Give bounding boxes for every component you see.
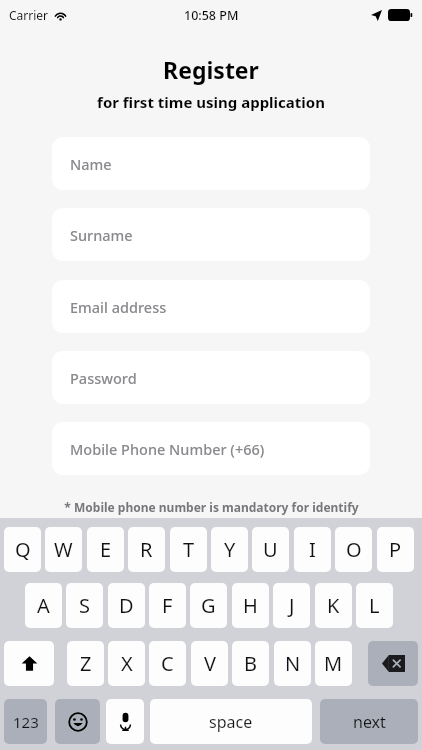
button[interactable]: Mobile Phone Number (+66): [52, 422, 370, 475]
staticText: P: [389, 536, 402, 563]
staticText: Name: [70, 154, 112, 174]
staticText: Carrier: [9, 7, 49, 23]
button[interactable]: 123: [4, 699, 47, 744]
staticText: Mobile Phone Number (+66): [70, 439, 265, 459]
staticText: next: [353, 711, 386, 733]
staticText: C: [161, 650, 174, 677]
staticText: Y: [224, 536, 236, 563]
button[interactable]: G: [190, 583, 227, 628]
button[interactable]: W: [45, 527, 82, 572]
staticText: T: [183, 536, 195, 563]
button[interactable]: Q: [4, 527, 41, 572]
button[interactable]: next: [320, 699, 418, 744]
button[interactable]: Backspace: [368, 641, 418, 686]
staticText: O: [346, 536, 362, 563]
button[interactable]: D: [108, 583, 145, 628]
staticText: 123: [13, 712, 39, 732]
staticText: D: [119, 592, 134, 619]
button[interactable]: F: [149, 583, 186, 628]
button[interactable]: S: [66, 583, 103, 628]
button[interactable]: C: [149, 641, 186, 686]
button[interactable]: T: [170, 527, 207, 572]
button[interactable]: Surname: [52, 208, 370, 261]
staticText: Surname: [70, 225, 133, 245]
button[interactable]: Name: [52, 137, 370, 190]
button[interactable]: Shift: [4, 641, 54, 686]
staticText: U: [263, 536, 278, 563]
button[interactable]: A: [25, 583, 62, 628]
staticText: Password: [70, 368, 137, 388]
button[interactable]: U: [252, 527, 289, 572]
button[interactable]: Email address: [52, 280, 370, 333]
button[interactable]: Voice input: [106, 699, 144, 744]
staticText: S: [79, 592, 90, 619]
staticText: L: [369, 592, 380, 619]
staticText: J: [289, 592, 295, 619]
staticText: F: [162, 592, 173, 619]
button[interactable]: L: [356, 583, 393, 628]
staticText: A: [37, 592, 50, 619]
button[interactable]: P: [377, 527, 414, 572]
button[interactable]: Z: [67, 641, 104, 686]
staticText: K: [327, 592, 340, 619]
button[interactable]: K: [315, 583, 352, 628]
staticText: V: [204, 650, 216, 677]
button[interactable]: Y: [211, 527, 248, 572]
button[interactable]: I: [294, 527, 331, 572]
button[interactable]: E: [87, 527, 124, 572]
button[interactable]: R: [128, 527, 165, 572]
staticText: 10:58 PM: [184, 7, 239, 24]
staticText: N: [285, 650, 301, 677]
button[interactable]: V: [191, 641, 228, 686]
staticText: X: [121, 650, 133, 677]
staticText: space: [209, 711, 253, 733]
button[interactable]: H: [232, 583, 269, 628]
button[interactable]: O: [335, 527, 372, 572]
staticText: for first time using application: [97, 92, 325, 112]
staticText: E: [100, 536, 112, 563]
staticText: Email address: [70, 297, 167, 317]
staticText: * Mobile phone number is mandatory for i…: [64, 499, 359, 515]
staticText: G: [201, 592, 216, 619]
button[interactable]: J: [273, 583, 310, 628]
staticText: W: [54, 536, 73, 563]
staticText: B: [244, 650, 257, 677]
button[interactable]: M: [315, 641, 352, 686]
staticText: M: [324, 650, 343, 677]
button[interactable]: B: [232, 641, 269, 686]
button[interactable]: Emoji: [55, 699, 100, 744]
button[interactable]: Password: [52, 351, 370, 404]
staticText: I: [309, 536, 316, 563]
staticText: Register: [163, 54, 259, 85]
staticText: Z: [80, 650, 92, 677]
staticText: H: [243, 592, 258, 619]
button[interactable]: X: [108, 641, 145, 686]
button[interactable]: N: [274, 641, 311, 686]
staticText: Q: [15, 536, 31, 563]
staticText: R: [140, 536, 153, 563]
button[interactable]: space: [150, 699, 312, 744]
other: Location: [371, 10, 382, 21]
